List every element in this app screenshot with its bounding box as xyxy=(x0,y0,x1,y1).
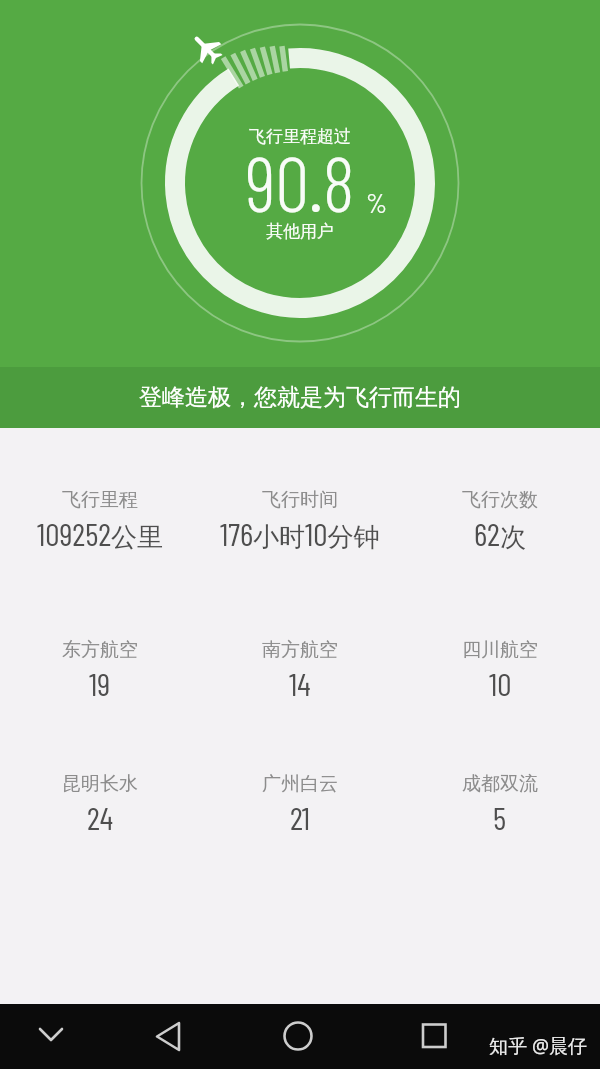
button[interactable]: 飞行时间 xyxy=(200,488,400,554)
staticText: 62次 xyxy=(474,514,526,554)
button[interactable]: 广州白云 xyxy=(200,772,400,836)
staticText: 10 xyxy=(489,664,512,702)
staticText: 知乎 @晨仔 xyxy=(489,1033,588,1059)
staticText: 24 xyxy=(87,798,114,836)
button[interactable]: 成都双流 xyxy=(400,772,600,836)
staticText: 19 xyxy=(89,664,111,702)
staticText: 飞行次数 xyxy=(462,488,538,512)
staticText: 飞行时间 xyxy=(262,488,338,512)
staticText: 90.8 xyxy=(0,136,600,227)
staticText: 广州白云 xyxy=(262,772,338,796)
staticText: 成都双流 xyxy=(462,772,538,796)
staticText: 176小时10分钟 xyxy=(220,514,380,554)
staticText: 昆明长水 xyxy=(62,772,138,796)
button[interactable]: 昆明长水 xyxy=(0,772,200,836)
button[interactable] xyxy=(414,1016,454,1056)
button[interactable]: 东方航空 xyxy=(0,638,200,702)
button[interactable] xyxy=(31,1016,71,1056)
staticText: 飞行里程超过 xyxy=(0,126,600,147)
staticText: 其他用户 xyxy=(0,221,600,242)
staticText: 东方航空 xyxy=(62,638,138,662)
button[interactable]: 飞行次数 xyxy=(400,488,600,554)
staticText: 5 xyxy=(493,798,507,836)
button[interactable]: 南方航空 xyxy=(200,638,400,702)
button[interactable] xyxy=(148,1017,188,1057)
staticText: % xyxy=(366,186,388,218)
staticText: 登峰造极，您就是为飞行而生的 xyxy=(139,383,461,412)
staticText: 飞行里程 xyxy=(62,488,138,512)
button[interactable]: 飞行里程 xyxy=(0,488,200,554)
staticText: 21 xyxy=(290,798,310,836)
staticText: 南方航空 xyxy=(262,638,338,662)
button[interactable]: 四川航空 xyxy=(400,638,600,702)
button[interactable] xyxy=(278,1016,318,1056)
staticText: 14 xyxy=(289,664,311,702)
button[interactable]: 登峰造极，您就是为飞行而生的 xyxy=(0,367,600,428)
staticText: 四川航空 xyxy=(462,638,538,662)
staticText: 109252公里 xyxy=(37,514,164,554)
